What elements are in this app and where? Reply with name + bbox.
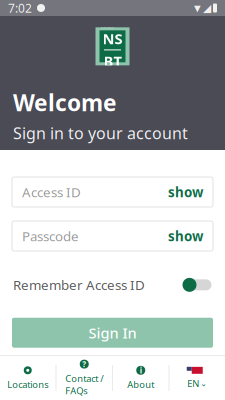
staticText: BT — [103, 51, 121, 71]
staticText: Sign In — [88, 323, 136, 342]
button[interactable]: i — [113, 356, 168, 400]
staticText: NORTHAMPTON ST. BOROUGH — [100, 22, 124, 29]
staticText: Sign in to your account — [13, 122, 188, 144]
button[interactable]: Sign In — [12, 318, 213, 348]
button[interactable]: show — [168, 227, 203, 245]
staticText: Remember Access ID — [13, 276, 145, 294]
staticText: Locations — [7, 378, 48, 391]
staticText: i — [140, 365, 142, 376]
button[interactable]: show — [168, 183, 203, 201]
staticText: Access ID — [22, 183, 81, 201]
button[interactable]: ? — [56, 356, 112, 400]
staticText: Passcode — [22, 227, 79, 245]
staticText: NS — [102, 29, 122, 48]
staticText: ⌄ — [200, 379, 207, 388]
staticText: ◢ — [203, 2, 211, 14]
button[interactable]: Locations — [0, 356, 55, 400]
staticText: EN — [187, 377, 199, 390]
staticText: Welcome — [13, 87, 117, 117]
staticText: ▾ — [194, 0, 201, 15]
staticText: Contact / FAQs — [65, 372, 103, 397]
staticText: 7:02 — [8, 0, 32, 16]
button[interactable]: Language English — [169, 356, 225, 400]
staticText: About — [127, 378, 154, 391]
staticText: show — [168, 227, 203, 245]
staticText: show — [168, 183, 203, 201]
button[interactable]: Remember Access ID toggle — [182, 277, 212, 293]
staticText: ? — [82, 359, 86, 369]
